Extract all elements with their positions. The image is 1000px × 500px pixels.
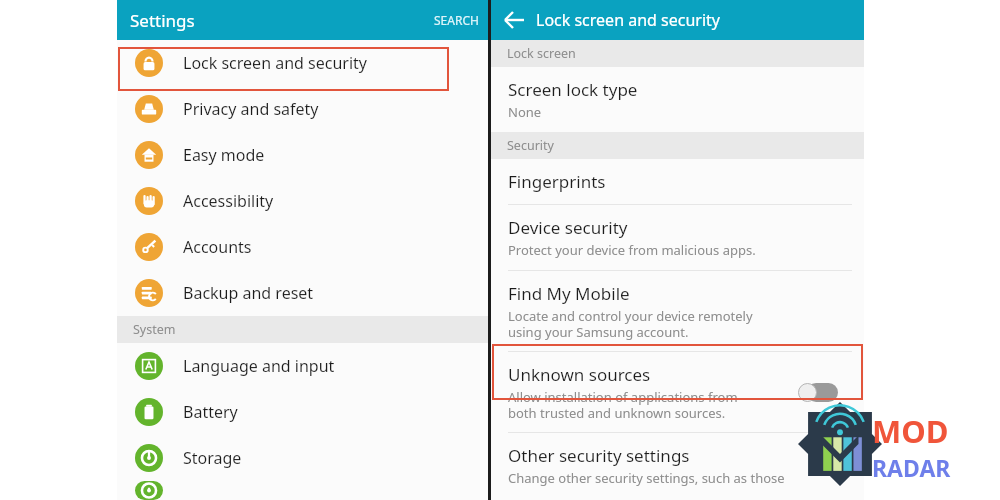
staticText: Security (507, 137, 554, 154)
button[interactable]: Backup and reset (117, 270, 489, 316)
staticText: None (508, 103, 542, 121)
staticText: Battery (183, 401, 238, 423)
staticText: Settings (130, 9, 195, 32)
staticText: Fingerprints (508, 170, 606, 193)
staticText: Unknown sources (508, 363, 651, 386)
staticText: Lock screen and security (183, 52, 367, 74)
staticText: Accessibility (183, 190, 274, 212)
staticText: Protect your device from malicious apps. (508, 241, 756, 259)
button[interactable]: Other security settings (491, 433, 864, 500)
staticText: System (133, 321, 176, 338)
button[interactable]: Battery (117, 389, 489, 435)
staticText: Device security (508, 216, 628, 239)
staticText: Change other security settings, such as … (508, 469, 785, 489)
staticText: Storage (183, 447, 242, 469)
staticText: Allow installation of applications from … (508, 388, 738, 421)
button[interactable]: Accessibility (117, 178, 489, 224)
staticText: Lock screen (507, 45, 576, 62)
button[interactable]: Fingerprints (491, 159, 864, 205)
staticText: Other security settings (508, 444, 690, 467)
button[interactable]: Find My Mobile (491, 271, 864, 352)
staticText: Lock screen and security (536, 9, 720, 31)
button[interactable]: Back (499, 5, 529, 35)
button[interactable]: Privacy and safety (117, 86, 489, 132)
button[interactable]: Screen lock type (491, 67, 864, 132)
button[interactable] (117, 481, 489, 500)
staticText: MOD (872, 410, 949, 452)
staticText: Find My Mobile (508, 282, 630, 305)
staticText: Language and input (183, 355, 335, 377)
staticText: Screen lock type (508, 78, 638, 101)
staticText: Backup and reset (183, 282, 314, 304)
staticText: Locate and control your device remotely … (508, 307, 753, 340)
staticText: Easy mode (183, 144, 265, 166)
staticText: Privacy and safety (183, 98, 319, 120)
staticText: SEARCH (434, 12, 479, 28)
button[interactable]: Storage (117, 435, 489, 481)
staticText: RADAR (872, 452, 951, 483)
button[interactable]: Lock screen and security (117, 40, 489, 86)
button[interactable]: Unknown sources (491, 352, 864, 433)
staticText: Accounts (183, 236, 252, 258)
button[interactable]: Accounts (117, 224, 489, 270)
button[interactable]: Language and input (117, 343, 489, 389)
button[interactable]: Device security (491, 205, 864, 271)
button[interactable]: Easy mode (117, 132, 489, 178)
button[interactable]: SEARCH (424, 4, 489, 36)
